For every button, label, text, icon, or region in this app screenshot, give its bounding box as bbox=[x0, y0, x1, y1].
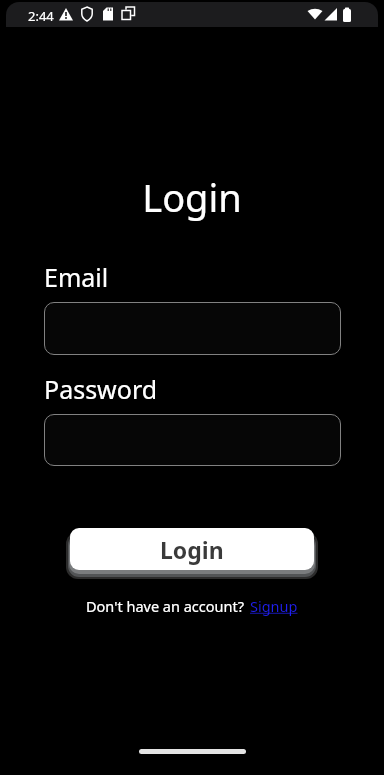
staticText: Password bbox=[44, 372, 158, 406]
staticText: Login bbox=[160, 534, 224, 565]
staticText: Don't have an account? bbox=[86, 596, 244, 616]
button[interactable] bbox=[44, 414, 341, 466]
staticText: Email bbox=[44, 260, 109, 294]
button[interactable]: Login bbox=[70, 528, 314, 570]
button[interactable]: Signup bbox=[250, 596, 298, 616]
staticText: Login bbox=[0, 171, 384, 223]
button[interactable] bbox=[44, 302, 341, 355]
staticText: 2:44 bbox=[28, 7, 54, 25]
